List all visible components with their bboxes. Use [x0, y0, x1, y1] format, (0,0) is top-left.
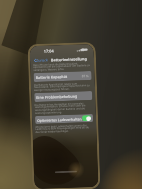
- staticText: Die Batterie Kapazität ist relativ zum N…: [34, 81, 92, 92]
- button[interactable]: Zurück: [33, 56, 49, 63]
- staticText: iPhone lernt dein Ladeverhalten womit da…: [35, 123, 94, 134]
- staticText: 87 %: [81, 74, 90, 78]
- button[interactable]: Optimiertes Ladeverhalten: [35, 114, 93, 124]
- staticText: Die Batterie hat momentan ein normales L…: [34, 101, 93, 115]
- staticText: Optimiertes Ladeverhalten: [37, 116, 82, 123]
- staticText: Zurück: [36, 57, 48, 62]
- staticText: Batterieeinstellung: [51, 56, 87, 62]
- button[interactable]: Eine Problembehebung: [34, 91, 92, 102]
- staticText: 17:04: [44, 48, 54, 54]
- staticText: Batterie Kapazität: [35, 74, 68, 80]
- staticText: Dein iPhone kann die Batterielaufzeit op…: [33, 61, 91, 72]
- button[interactable]: Optimiertes Ladeverhalten aktivieren: [82, 115, 91, 121]
- staticText: Eine Problembehebung: [36, 93, 77, 100]
- button[interactable]: Batterie Kapazität: [33, 71, 92, 82]
